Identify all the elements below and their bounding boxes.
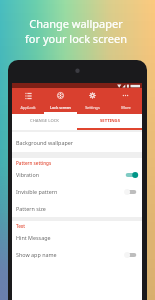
button[interactable]: Show app name [12,246,142,263]
staticText: Invisible pattern [16,188,58,195]
button[interactable]: Settings [76,88,109,114]
button[interactable]: AppLock [12,88,44,114]
staticText: Lock screen [50,105,71,110]
staticText: SETTINGS [100,118,120,124]
button[interactable]: Vibration [12,166,142,183]
button[interactable]: More [109,88,142,114]
staticText: AppLock [20,105,36,110]
staticText: Text [16,223,26,229]
staticText: Hint Message [16,234,51,241]
staticText: Background wallpaper [16,139,74,146]
staticText: More [121,105,131,110]
button[interactable]: Lock screen [44,88,76,114]
staticText: Show app name [16,251,57,258]
button[interactable]: SETTINGS [77,114,142,128]
button[interactable]: Pattern size [12,200,142,217]
staticText: Pattern size [16,205,46,212]
button[interactable]: CHANGE LOCK [12,114,77,128]
staticText: Pattern settings [16,160,52,166]
button[interactable]: Background wallpaper [12,132,142,152]
staticText: CHANGE LOCK [30,118,59,124]
button[interactable]: Hint Message [12,229,142,246]
staticText: Change wallpaper [29,16,123,31]
staticText: for your lock screen [25,31,127,46]
staticText: Vibration [16,171,40,178]
button[interactable]: Invisible pattern [12,183,142,200]
staticText: Settings [85,105,100,110]
